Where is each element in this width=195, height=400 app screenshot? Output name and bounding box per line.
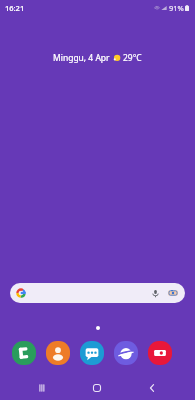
button[interactable]: Messages [80,341,104,365]
staticText: Minggu, 4 Apr [53,52,110,64]
staticText: 29°C [123,52,142,64]
button[interactable]: Voice search [10,283,185,303]
button[interactable]: Recent apps [15,376,69,400]
staticText: 91% [169,3,184,13]
staticText: 16:21 [5,3,25,13]
button[interactable]: Contacts [46,341,70,365]
other: Google Lens [168,288,178,298]
other: Voice search [151,289,160,298]
button[interactable]: Home [69,376,124,400]
button[interactable]: Camera [148,341,172,365]
button[interactable]: Minggu, 4 Apr [0,52,195,64]
button[interactable]: Phone [12,341,36,365]
button[interactable]: Internet [114,341,138,365]
button[interactable]: Back [124,376,179,400]
